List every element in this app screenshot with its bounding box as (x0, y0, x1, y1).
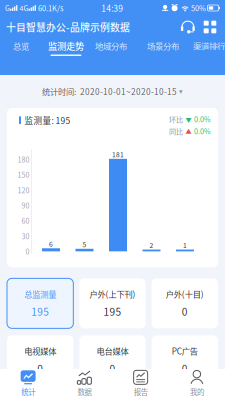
button[interactable]: 场景分布 (139, 39, 187, 56)
button[interactable]: 渠道排行 (185, 39, 225, 56)
staticText: 6 (49, 239, 53, 249)
staticText: 渠道排行 (193, 40, 225, 52)
staticText: ▲ (185, 127, 191, 136)
staticText: 监测量: 195 (24, 114, 70, 126)
staticText: ▼ (185, 115, 191, 124)
button[interactable]: 总览 (7, 39, 35, 56)
staticText: 5 (82, 239, 86, 249)
staticText: 户外(十目) (166, 288, 204, 300)
staticText: 0.0% (194, 126, 211, 136)
staticText: 户外(上下刊) (89, 288, 135, 300)
staticText: 30 (21, 231, 29, 241)
staticText: 0 (182, 304, 188, 319)
button[interactable]: 统计 (0, 366, 56, 400)
staticText: 监测走势 (48, 39, 84, 52)
staticText: 地域分布 (95, 40, 127, 52)
staticText: 4G (17, 3, 28, 13)
staticText: 电台媒体 (96, 345, 128, 357)
button[interactable]: 客服 (177, 17, 199, 37)
staticText: G (5, 3, 10, 13)
staticText: 报告 (134, 386, 148, 397)
staticText: 180 (17, 154, 29, 164)
staticText: 总览 (13, 40, 29, 52)
staticText: 195 (31, 304, 49, 319)
button[interactable]: 户外(十目) (152, 278, 218, 328)
button[interactable]: 监测走势 (40, 39, 92, 56)
staticText: 十目智慧办公-品牌示例数据 (6, 20, 130, 34)
staticText: 120 (17, 185, 29, 195)
staticText: 0 (37, 361, 43, 376)
staticText: 195 (103, 304, 121, 319)
staticText: 0.0% (194, 114, 211, 124)
button[interactable]: 总监测量 (7, 278, 73, 328)
staticText: ▾ (179, 87, 183, 96)
staticText: 统计时间: 2020-10-01~2020-10-15 (42, 85, 179, 97)
staticText: 统计 (21, 386, 35, 397)
button[interactable]: 电台媒体 (79, 335, 146, 385)
staticText: 数据 (77, 386, 91, 397)
staticText: PC广告 (172, 345, 198, 357)
staticText: 我的 (190, 386, 204, 397)
staticText: 60.1K/s (36, 3, 63, 13)
staticText: 电视媒体 (24, 345, 56, 357)
button[interactable]: 电视媒体 (7, 335, 73, 385)
staticText: 总监测量 (24, 288, 56, 300)
staticText: 181 (112, 149, 124, 159)
staticText: 90 (21, 200, 29, 210)
staticText: 0 (109, 361, 115, 376)
button[interactable]: 户外(上下刊) (79, 278, 146, 328)
button[interactable]: PC广告 (152, 335, 218, 385)
staticText: 场景分布 (147, 40, 179, 52)
staticText: 50% (191, 3, 206, 13)
staticText: 1 (183, 240, 187, 250)
staticText: 2 (149, 240, 153, 250)
staticText: 同比 (169, 126, 183, 136)
button[interactable]: 数据 (56, 366, 112, 400)
staticText: 0 (182, 361, 188, 376)
button[interactable]: 统计时间: 2020-10-01~2020-10-15 (0, 75, 225, 108)
staticText: 150 (17, 169, 29, 180)
button[interactable]: 我的 (169, 366, 225, 400)
staticText: 14:39 (101, 2, 123, 14)
button[interactable]: 应用菜单 (199, 17, 221, 37)
staticText: 60 (21, 215, 29, 226)
staticText: 环比 (169, 114, 183, 124)
button[interactable]: 报告 (112, 366, 169, 400)
staticText: 0 (25, 246, 29, 256)
button[interactable]: 地域分布 (87, 39, 135, 56)
